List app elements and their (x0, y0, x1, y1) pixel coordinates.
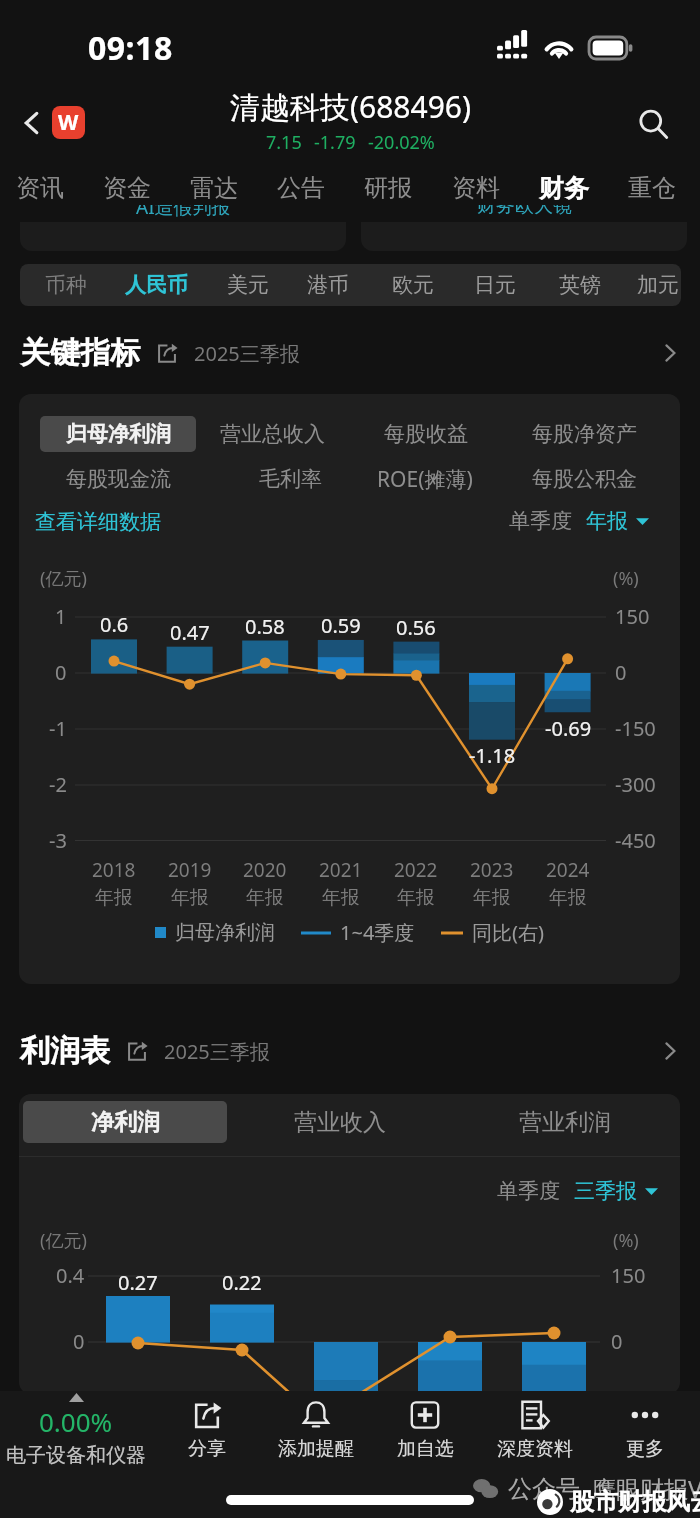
button[interactable]: 每股净资产 (506, 416, 662, 452)
button[interactable]: 年报 (586, 508, 649, 534)
staticText: -300 (615, 771, 656, 798)
staticText: -1.79 (314, 130, 356, 155)
staticText: 欧元 (392, 272, 434, 298)
button[interactable]: 欧元 (371, 264, 455, 306)
button[interactable]: 归母净利润 (40, 416, 196, 452)
button[interactable]: 添加提醒 (261, 1391, 370, 1469)
button[interactable]: 营业总收入 (194, 416, 350, 452)
button[interactable]: 每股公积金 (506, 461, 662, 497)
staticText: W (58, 108, 79, 137)
button[interactable]: 单季度 (497, 1178, 560, 1204)
staticText: 年报 (171, 886, 209, 910)
staticText: (亿元) (40, 566, 87, 591)
button[interactable]: 财务 (520, 164, 608, 212)
button[interactable]: Wind 标志 (52, 106, 85, 139)
button[interactable]: 加元 (616, 264, 681, 306)
button[interactable]: 营业收入 (238, 1101, 442, 1143)
button[interactable]: 三季报 (574, 1178, 658, 1204)
staticText: 三季报 (574, 1178, 637, 1204)
staticText: 股市财报风云 (570, 1487, 700, 1517)
staticText: 2018 (92, 857, 136, 883)
staticText: 清越科技(688496) (230, 86, 471, 127)
staticText: 归母净利润 (66, 421, 171, 447)
staticText: 150 (611, 1262, 646, 1289)
button[interactable]: 搜索 (628, 99, 678, 149)
staticText: 0.59 (321, 612, 361, 639)
staticText: 日元 (474, 272, 516, 298)
button[interactable]: 更多 (590, 1391, 700, 1469)
staticText: 0.6 (100, 611, 129, 638)
button[interactable]: 币种 (24, 264, 108, 306)
button[interactable]: 深度资料 (480, 1391, 590, 1469)
button[interactable]: 利润表 (20, 1023, 680, 1079)
button[interactable]: 营业利润 (463, 1101, 667, 1143)
staticText: 公告 (277, 173, 325, 203)
button[interactable]: 关键指标 (20, 325, 680, 381)
staticText: (%) (613, 566, 639, 591)
button[interactable]: 公告 (257, 164, 344, 212)
staticText: 单季度 (509, 508, 572, 534)
button[interactable]: 港币 (286, 264, 370, 306)
button[interactable]: ROE(摊薄) (347, 461, 503, 497)
staticText: 0.58 (245, 613, 285, 640)
button[interactable]: 资料 (432, 164, 520, 212)
button[interactable]: 雷达 (170, 164, 257, 212)
staticText: 每股公积金 (532, 466, 637, 492)
staticText: 0.22 (222, 1269, 262, 1296)
button[interactable]: 毛利率 (212, 461, 368, 497)
staticText: 美元 (227, 272, 269, 298)
button[interactable]: 日元 (453, 264, 537, 306)
button[interactable]: 研报 (344, 164, 432, 212)
staticText: -450 (615, 827, 656, 854)
staticText: 0.47 (170, 619, 210, 646)
staticText: -1 (49, 715, 67, 742)
staticText: 7.15 (266, 130, 302, 155)
staticText: 0 (615, 659, 627, 686)
staticText: 1~4季度 (340, 919, 415, 946)
staticText: -2 (49, 771, 67, 798)
staticText: 利润表 (20, 1032, 110, 1070)
staticText: 2022 (394, 857, 438, 883)
staticText: AI造假判报 (136, 205, 231, 220)
staticText: 每股收益 (384, 421, 468, 447)
staticText: 年报 (322, 886, 360, 910)
staticText: 财务欧大镜 (477, 205, 572, 218)
staticText: 2025三季报 (164, 1038, 270, 1065)
button[interactable]: 英镑 (538, 264, 622, 306)
button[interactable]: 分享 (152, 1391, 261, 1469)
button[interactable]: 每股收益 (348, 416, 504, 452)
staticText: 每股现金流 (66, 466, 171, 492)
button[interactable]: 每股现金流 (40, 461, 196, 497)
staticText: 单季度 (497, 1178, 560, 1204)
staticText: 1 (55, 603, 67, 630)
staticText: 雷达 (190, 173, 238, 203)
staticText: 年报 (397, 886, 435, 910)
button[interactable]: 0.00% (0, 1391, 152, 1469)
button[interactable]: 资金 (83, 164, 170, 212)
staticText: 0.27 (118, 1269, 158, 1296)
staticText: 0 (73, 1328, 85, 1355)
staticText: 0.56 (396, 614, 436, 641)
staticText: 电子设备和仪器 (6, 1443, 146, 1468)
button[interactable]: 资讯 (0, 164, 83, 212)
staticText: -150 (615, 715, 656, 742)
staticText: 0.00% (39, 1404, 113, 1439)
button[interactable]: 美元 (206, 264, 290, 306)
staticText: -3 (49, 827, 67, 854)
button[interactable]: 加自选 (370, 1391, 480, 1469)
staticText: 150 (615, 603, 650, 630)
button[interactable]: 人民币 (114, 264, 198, 306)
button[interactable]: 查看详细数据 (35, 509, 161, 535)
button[interactable]: 净利润 (23, 1101, 227, 1143)
staticText: 研报 (364, 173, 412, 203)
button[interactable]: 单季度 (509, 508, 572, 534)
button[interactable]: 重仓 (608, 164, 696, 212)
button[interactable]: 返回 (10, 101, 54, 145)
staticText: 年报 (549, 886, 587, 910)
staticText: 0.4 (56, 1262, 85, 1289)
staticText: 公众号 (508, 1474, 580, 1504)
staticText: 2025三季报 (194, 340, 300, 367)
staticText: 2024 (546, 857, 590, 883)
